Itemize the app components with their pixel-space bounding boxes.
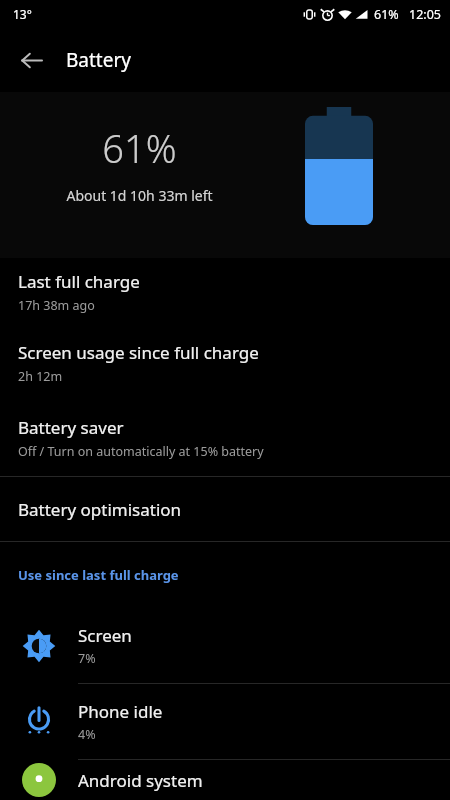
staticText: 61% — [102, 122, 177, 174]
staticText: Screen — [78, 624, 132, 647]
button[interactable]: Back — [8, 37, 54, 83]
staticText: Phone idle — [78, 700, 163, 723]
staticText: About 1d 10h 33m left — [66, 186, 213, 205]
staticText: Android system — [78, 769, 203, 792]
button[interactable]: Screen — [0, 608, 450, 683]
staticText: 7% — [78, 650, 96, 667]
staticText: Screen usage since full charge — [18, 341, 259, 364]
staticText: 2h 12m — [18, 368, 63, 385]
staticText: 13° — [13, 6, 32, 22]
staticText: Battery saver — [18, 416, 124, 439]
button[interactable]: Last full charge — [0, 258, 450, 326]
staticText: Off / Turn on automatically at 15% batte… — [18, 443, 264, 460]
button[interactable]: Screen usage since full charge — [0, 326, 450, 400]
staticText: Battery optimisation — [18, 498, 182, 521]
staticText: 12:05 — [409, 6, 441, 23]
staticText: Battery — [66, 47, 131, 73]
staticText: Last full charge — [18, 270, 140, 293]
button[interactable]: Battery saver — [0, 400, 450, 476]
staticText: 4% — [78, 726, 96, 743]
button[interactable]: Android system — [0, 760, 450, 800]
staticText: 17h 38m ago — [18, 297, 95, 314]
button[interactable]: Phone idle — [0, 684, 450, 759]
staticText: Use since last full charge — [18, 566, 179, 584]
button[interactable]: Battery optimisation — [0, 477, 450, 541]
staticText: 61% — [374, 6, 399, 23]
